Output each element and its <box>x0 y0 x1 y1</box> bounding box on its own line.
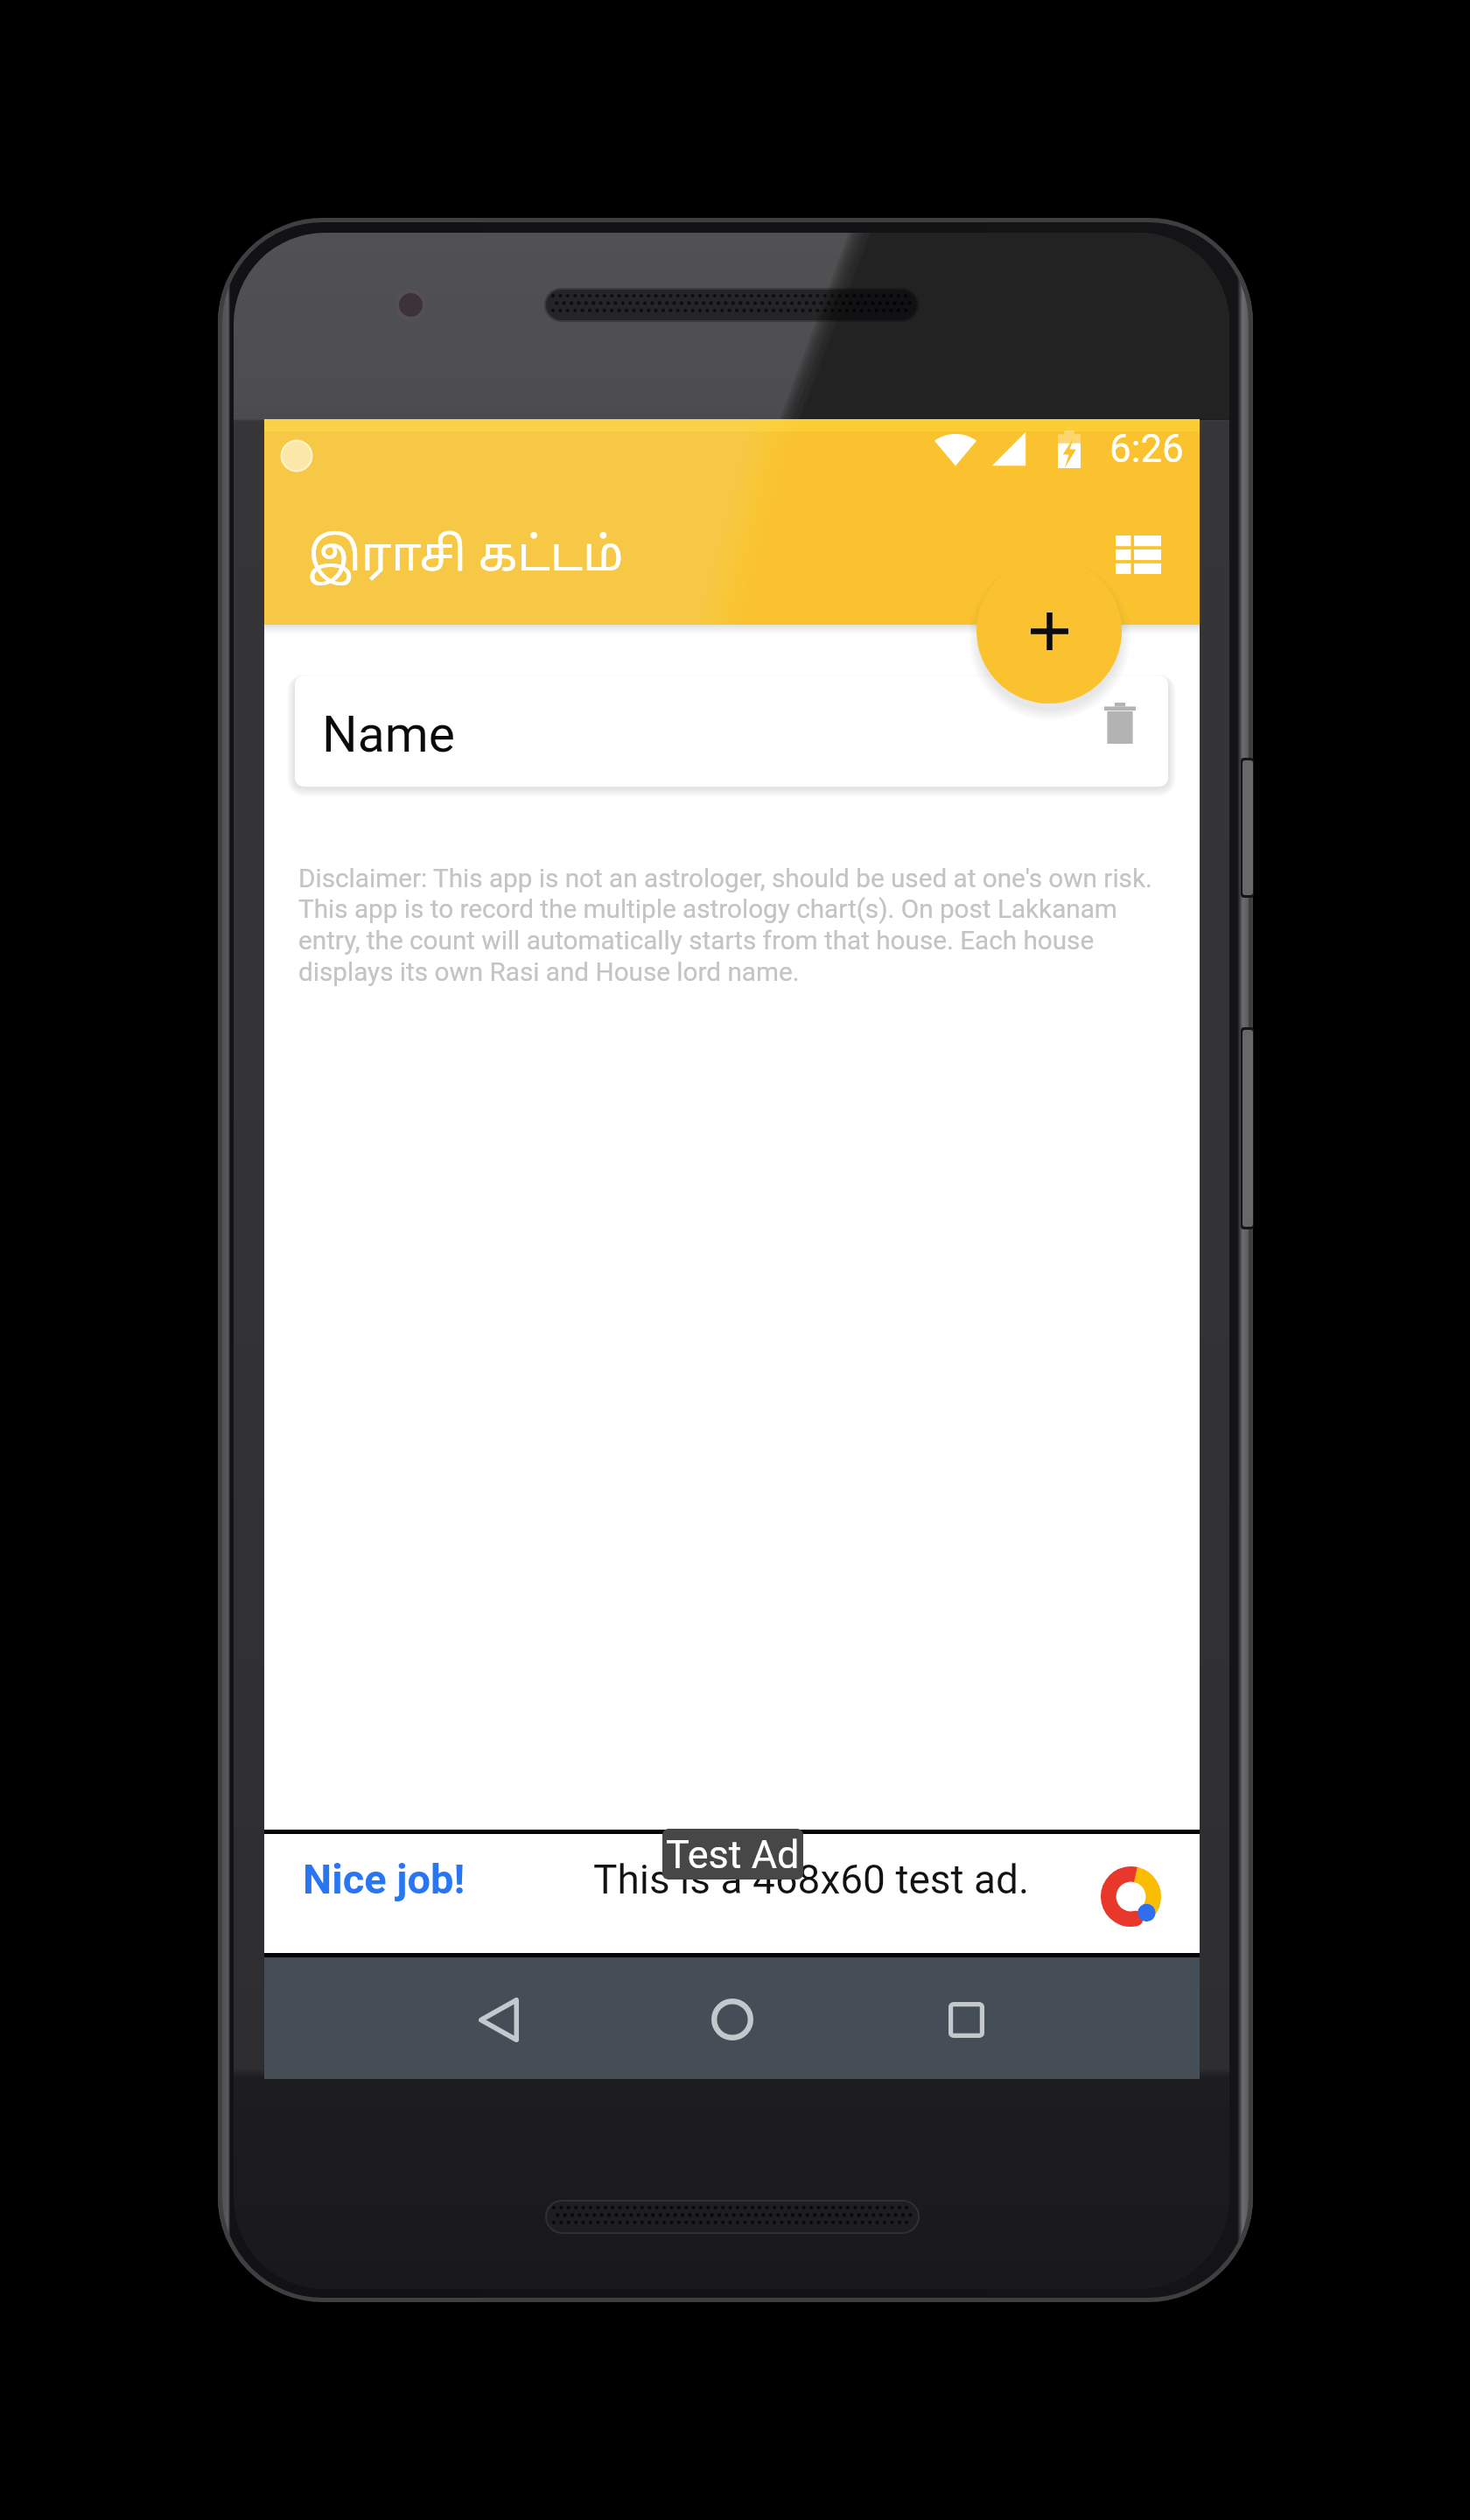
staticText: Disclaimer: This app is not an astrologe… <box>298 863 1165 987</box>
button[interactable]: Home <box>692 1979 773 2060</box>
staticText: This is a 468x60 test ad. <box>593 1856 1030 1903</box>
staticText: Name <box>322 705 455 764</box>
button[interactable]: Name <box>295 675 1168 787</box>
staticText: Nice job! <box>303 1855 465 1903</box>
staticText: Test Ad <box>666 1831 800 1878</box>
staticText: 6:26 <box>1109 426 1184 472</box>
button[interactable]: Back <box>458 1979 539 2060</box>
button[interactable]: List view <box>1102 518 1175 591</box>
button[interactable]: Add <box>976 558 1122 703</box>
button[interactable]: Recent apps <box>926 1979 1006 2060</box>
button[interactable]: Delete <box>1094 696 1146 749</box>
staticText: இராசி கட்டம் <box>308 529 624 588</box>
